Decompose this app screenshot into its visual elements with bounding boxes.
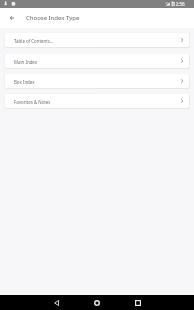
button[interactable]: Home bbox=[87, 295, 107, 310]
button[interactable]: Back bbox=[0, 8, 24, 28]
button[interactable]: Table of Contents... bbox=[5, 33, 189, 47]
staticText: Box Index bbox=[14, 79, 35, 85]
staticText: Main Index bbox=[14, 59, 38, 65]
staticText: Favorites & Notes bbox=[14, 99, 51, 105]
button[interactable]: Back bbox=[46, 295, 66, 310]
button[interactable]: Favorites & Notes bbox=[5, 94, 189, 108]
staticText: 12:56 bbox=[173, 1, 185, 7]
button[interactable]: Box Index bbox=[5, 74, 189, 88]
staticText: Choose Index Type bbox=[26, 14, 80, 22]
button[interactable]: Recent apps bbox=[128, 295, 148, 310]
button[interactable]: Main Index bbox=[5, 54, 189, 68]
staticText: Table of Contents... bbox=[14, 38, 54, 44]
